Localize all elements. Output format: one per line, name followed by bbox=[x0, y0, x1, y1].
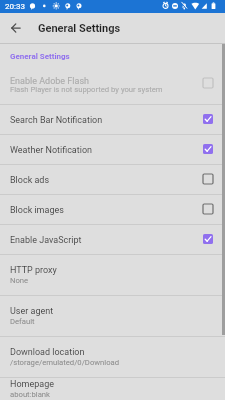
button[interactable]: Enable Adobe Flash bbox=[0, 64, 225, 104]
staticText: Flash Player is not supported by your sy… bbox=[10, 85, 163, 94]
button[interactable]: Search Bar Notification bbox=[0, 105, 225, 134]
staticText: 20:33 bbox=[5, 2, 25, 11]
staticText: Enable JavaScript bbox=[10, 235, 205, 246]
staticText: General Settings bbox=[10, 52, 70, 61]
button[interactable]: Download location bbox=[0, 337, 225, 377]
button[interactable]: Homepage bbox=[0, 378, 225, 400]
staticText: Block ads bbox=[10, 175, 205, 186]
staticText: Download location bbox=[10, 347, 85, 358]
staticText: Default bbox=[10, 317, 35, 326]
button[interactable]: Back bbox=[0, 13, 31, 43]
button[interactable]: Block images bbox=[0, 195, 225, 224]
staticText: Weather Notification bbox=[10, 145, 205, 156]
staticText: None bbox=[10, 276, 29, 285]
staticText: about:blank bbox=[10, 390, 51, 399]
button[interactable]: User agent bbox=[0, 296, 225, 336]
button[interactable]: Weather Notification bbox=[0, 135, 225, 164]
staticText: Homepage bbox=[10, 379, 54, 390]
staticText: Enable Adobe Flash bbox=[10, 76, 90, 87]
staticText: User agent bbox=[10, 306, 54, 317]
staticText: /storage/emulated/0/Download bbox=[10, 358, 120, 367]
button[interactable]: HTTP proxy bbox=[0, 255, 225, 295]
button[interactable]: Block ads bbox=[0, 165, 225, 194]
staticText: HTTP proxy bbox=[10, 265, 57, 276]
button[interactable]: Enable JavaScript bbox=[0, 225, 225, 254]
staticText: Search Bar Notification bbox=[10, 115, 205, 126]
staticText: General Settings bbox=[38, 22, 121, 35]
staticText: Block images bbox=[10, 205, 205, 216]
